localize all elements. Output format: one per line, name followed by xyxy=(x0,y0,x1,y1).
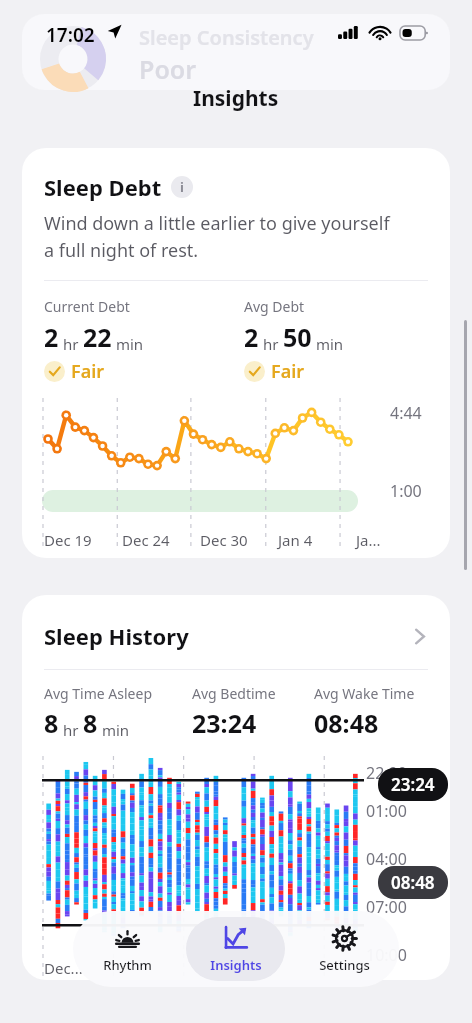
button[interactable]: Sleep Debt xyxy=(22,148,450,558)
staticText: Ja... xyxy=(356,530,416,550)
staticText: 8 xyxy=(83,706,98,740)
staticText: 10:00 xyxy=(366,944,407,966)
staticText: 50 xyxy=(283,320,312,354)
staticText: 2 xyxy=(44,320,59,354)
staticText: Current Debt xyxy=(44,297,130,316)
staticText: Sleep History xyxy=(44,621,189,651)
staticText: Avg Bedtime xyxy=(192,684,276,703)
staticText: Rhythm xyxy=(103,956,152,974)
button[interactable]: Settings xyxy=(295,917,394,981)
staticText: 08:48 xyxy=(314,706,379,740)
button[interactable]: Open sleep history xyxy=(411,628,428,645)
button[interactable]: Rhythm xyxy=(78,917,176,981)
button[interactable]: Sleep debt info xyxy=(171,176,193,198)
staticText: Settings xyxy=(319,956,370,974)
staticText: Wind down a little earlier to give yours… xyxy=(44,211,390,262)
staticText: 22 xyxy=(83,320,112,354)
staticText: 22:00 xyxy=(366,762,407,784)
staticText: i xyxy=(180,178,184,196)
staticText: 08:48 xyxy=(391,871,435,894)
button[interactable]: Sleep History xyxy=(22,595,450,980)
staticText: min xyxy=(112,334,144,354)
staticText: min xyxy=(98,720,130,740)
staticText: Avg Debt xyxy=(244,297,305,316)
staticText: Sleep Debt xyxy=(44,172,162,202)
staticText: Dec 19 xyxy=(44,530,122,550)
staticText: Avg Time Asleep xyxy=(44,684,152,703)
staticText: Insights xyxy=(193,84,279,113)
staticText: hr xyxy=(259,334,283,354)
staticText: 2 xyxy=(244,320,259,354)
staticText: 01:00 xyxy=(366,800,407,822)
staticText: hr xyxy=(59,334,83,354)
staticText: 23:24 xyxy=(391,773,435,796)
staticText: hr xyxy=(59,720,83,740)
staticText: Fair xyxy=(71,359,105,384)
button[interactable]: Insights xyxy=(186,917,285,981)
staticText: 23:24 xyxy=(192,706,257,740)
staticText: Fair xyxy=(271,359,305,384)
staticText: 8 xyxy=(44,706,59,740)
staticText: Sleep Consistency xyxy=(139,24,314,51)
staticText: 07:00 xyxy=(366,896,407,918)
staticText: Dec... xyxy=(44,958,83,978)
staticText: Dec 30 xyxy=(200,530,278,550)
staticText: 04:00 xyxy=(366,848,407,870)
staticText: 1:00 xyxy=(390,480,422,502)
staticText: Dec 24 xyxy=(122,530,200,550)
staticText: Jan 4 xyxy=(278,530,356,550)
staticText: 17:02 xyxy=(46,22,95,48)
staticText: Avg Wake Time xyxy=(314,684,415,703)
staticText: min xyxy=(312,334,344,354)
staticText: Insights xyxy=(210,956,262,974)
staticText: 4:44 xyxy=(390,402,422,424)
staticText: Poor xyxy=(139,52,197,86)
